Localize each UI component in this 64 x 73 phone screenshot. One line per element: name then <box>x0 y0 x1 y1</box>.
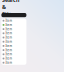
staticText: Item <box>5 48 11 52</box>
staticText: Item <box>5 31 11 35</box>
staticText: Search & Filter <box>2 0 19 18</box>
staticText: Item <box>5 36 11 39</box>
staticText: Item <box>5 61 11 64</box>
staticText: Item <box>5 19 11 22</box>
staticText: Item <box>5 44 11 48</box>
staticText: Item <box>5 52 11 56</box>
staticText: Item <box>5 23 11 27</box>
staticText: Item <box>5 57 11 60</box>
staticText: Item <box>5 27 11 31</box>
staticText: Item <box>5 40 11 43</box>
